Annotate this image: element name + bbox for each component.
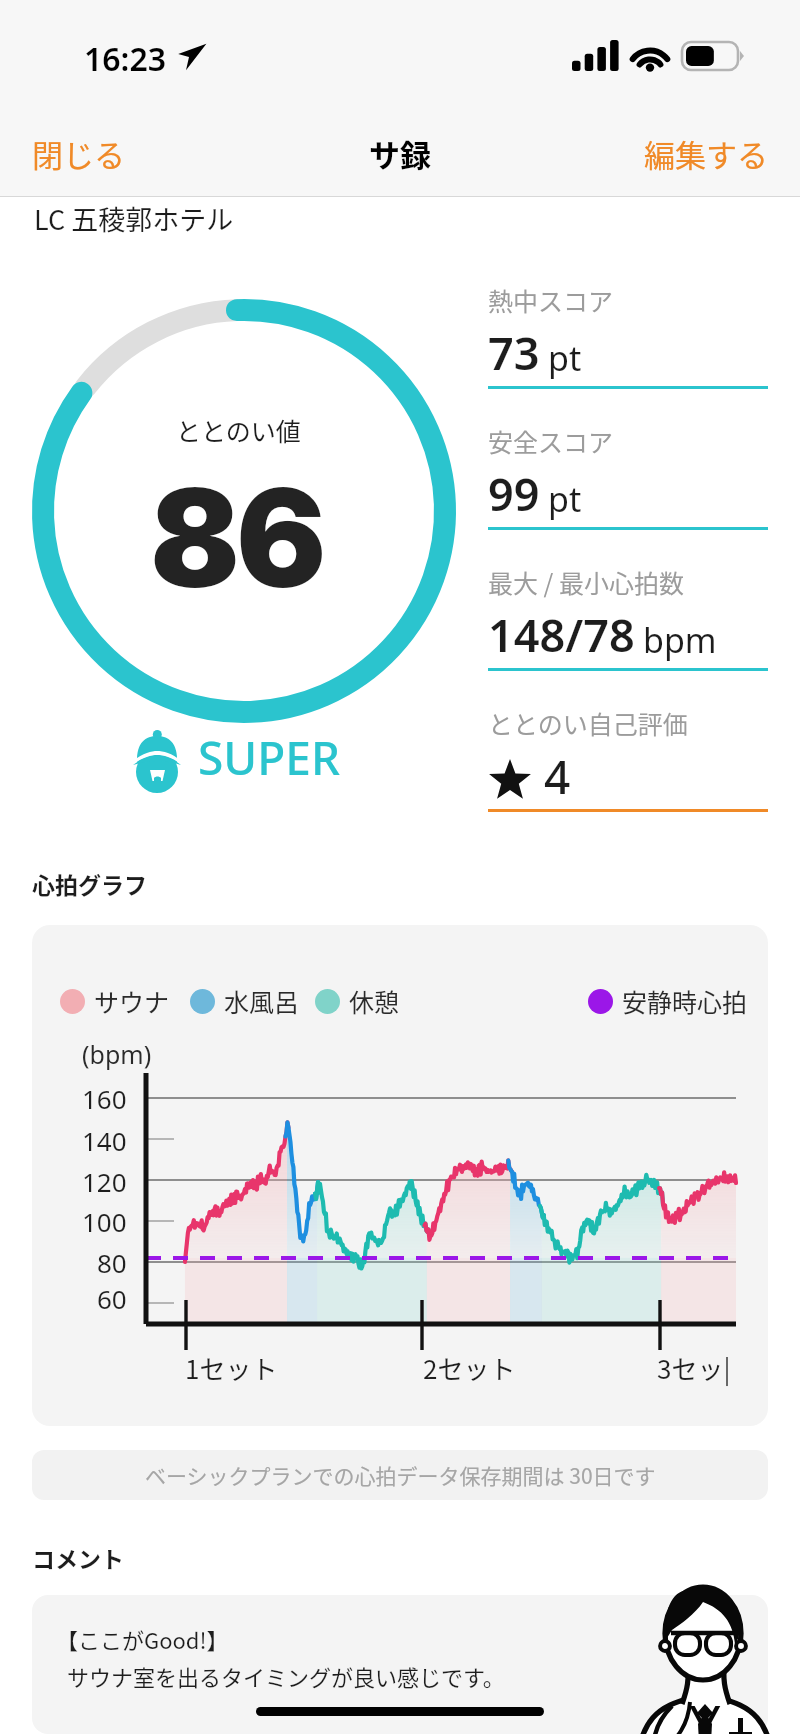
staticText: 160 [82,1081,127,1116]
staticText: pt [548,335,582,381]
staticText: 99 [488,463,540,524]
staticText: 心拍グラフ [32,867,147,900]
staticText: ととのい自己評価 [488,705,688,741]
staticText: 1セット [185,1349,278,1387]
staticText: 最大 / 最小心拍数 [488,564,685,600]
staticText: bpm [643,617,717,663]
staticText: サウナ室を出るタイミングが良い感じです。 [67,1660,505,1692]
staticText: 熱中スコア [488,282,614,318]
staticText: 60 [97,1281,127,1316]
staticText: 73 [488,322,540,383]
staticText: サ録 [369,131,431,176]
staticText: 安全スコア [488,423,614,459]
other: Doctor illustration [628,1586,792,1734]
button[interactable] [32,1595,768,1734]
staticText: 148/78 [488,604,635,665]
staticText: 100 [82,1204,127,1239]
button[interactable]: サウナ [32,925,768,1426]
staticText: 休憩 [349,983,400,1019]
staticText: 2セット [423,1349,516,1387]
staticText: ベーシックプランでの心拍データ保存期間は 30日です [145,1460,656,1490]
staticText: SUPER [198,726,341,789]
staticText: 編集する [644,131,768,176]
staticText: pt [548,476,582,522]
staticText: 80 [97,1245,127,1280]
staticText: 86 [152,456,325,618]
button[interactable]: 編集する [624,117,800,190]
staticText: (bpm) [82,1037,152,1071]
button[interactable]: LC 五稜郭ホテル [0,199,800,238]
staticText: 120 [82,1164,127,1199]
button[interactable]: 閉じる [0,117,145,190]
staticText: 安静時心拍 [622,983,748,1019]
staticText: 4 [544,745,571,808]
staticText: ととのい値 [176,412,301,448]
other: Sauna rank: SUPER [134,722,178,788]
staticText: 水風呂 [224,983,300,1019]
staticText: 3セッ| [657,1349,731,1387]
staticText: サウナ [94,983,170,1019]
staticText: 【ここがGood!】 [56,1623,229,1655]
button[interactable]: ベーシックプランでの心拍データ保存期間は 30日です [32,1450,768,1500]
staticText: 16:23 [84,37,167,81]
staticText: 閉じる [32,131,125,176]
staticText: 140 [82,1123,127,1158]
staticText: LC 五稜郭ホテル [34,199,234,238]
staticText: コメント [32,1541,124,1574]
